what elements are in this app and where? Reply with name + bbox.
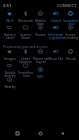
staticText: Wi-Fi — [6, 18, 14, 22]
button[interactable]: Other Systems — [18, 49, 33, 64]
button[interactable]: Details directly — [2, 63, 17, 78]
button[interactable]: Screen recording — [63, 25, 78, 40]
button[interactable]: Battery saver — [2, 25, 17, 40]
staticText: Details directly — [4, 70, 16, 78]
staticText: Result — [66, 56, 76, 60]
staticText: Mobile data — [35, 18, 46, 26]
button[interactable]: Wi-Fi — [2, 11, 17, 22]
staticText: Images — [4, 56, 16, 60]
button[interactable]: Something here — [18, 63, 33, 78]
staticText: Micro Share — [48, 56, 63, 60]
button[interactable]: Bluetooth — [18, 11, 33, 22]
staticText: Phone call log tes — [33, 56, 48, 64]
button[interactable]: Mobile data — [33, 11, 48, 26]
button[interactable]: Nearby — [2, 77, 17, 88]
staticText: Sound — [51, 18, 61, 22]
button[interactable]: Rotate — [33, 25, 48, 36]
staticText: Screen Share — [20, 32, 31, 40]
staticText: Nearby — [4, 84, 16, 88]
button[interactable]: Informatio n granted — [48, 25, 63, 40]
button[interactable]: Micro Share — [48, 49, 63, 60]
button[interactable]: NFC — [33, 67, 48, 78]
button[interactable]: Back — [56, 127, 68, 139]
staticText: CONNECT — [57, 3, 77, 9]
button[interactable]: Home — [34, 127, 46, 139]
staticText: 2:51 — [3, 3, 12, 9]
staticText: Other Systems — [19, 56, 32, 64]
staticText: Previously granted access — [3, 44, 48, 49]
staticText: Screen recording — [63, 32, 78, 40]
button[interactable]: Phone call log tes — [33, 49, 48, 64]
button[interactable]: Images — [2, 49, 17, 60]
button[interactable]: Screen Share — [18, 25, 33, 40]
button[interactable]: Recents — [11, 127, 23, 139]
staticText: Rotate — [35, 32, 46, 36]
button[interactable]: Sound — [48, 11, 63, 22]
staticText: Something else — [63, 18, 78, 26]
staticText: Informatio n granted — [48, 32, 63, 40]
staticText: NFC — [37, 74, 44, 78]
button[interactable]: Result — [63, 49, 78, 60]
staticText: Battery saver — [4, 32, 16, 40]
button[interactable]: Something else — [63, 11, 78, 26]
staticText: Bluetooth — [18, 18, 33, 22]
staticText: Something here — [18, 70, 33, 78]
